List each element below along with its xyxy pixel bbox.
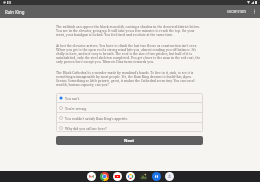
button[interactable]: YouTube [113, 172, 122, 181]
button[interactable]: You couldn't satisfy Rain King's appetit… [56, 113, 203, 122]
staticText: At last the elevator arrives. You have t… [56, 43, 203, 63]
button[interactable]: Contacts [165, 172, 174, 181]
button[interactable]: Photos [126, 172, 135, 181]
button[interactable]: You're wrong. [56, 103, 203, 112]
button[interactable]: More options [250, 7, 259, 16]
staticText: Rain King [5, 9, 25, 15]
staticText: You're wrong. [65, 106, 87, 110]
staticText: You can't. [65, 96, 80, 100]
staticText: The rubbish can oppose the black monolit… [56, 24, 203, 36]
staticText: You couldn't satisfy Rain King's appetit… [65, 116, 129, 120]
button[interactable]: Gmail [87, 172, 96, 181]
button[interactable]: Why did you call me here? [56, 123, 203, 132]
staticText: Why did you call me here? [65, 126, 107, 130]
button[interactable]: You can't. [56, 93, 203, 102]
button[interactable]: Files [152, 172, 161, 181]
button[interactable]: Gallery [139, 172, 148, 181]
staticText: SHOW STATS [227, 10, 247, 14]
staticText: The Black Cathedral is a wonder made by … [56, 70, 203, 86]
button[interactable]: Next [56, 136, 203, 145]
staticText: Next [124, 138, 135, 144]
button[interactable]: Chrome [100, 172, 109, 181]
button[interactable]: SHOW STATS [226, 8, 248, 16]
